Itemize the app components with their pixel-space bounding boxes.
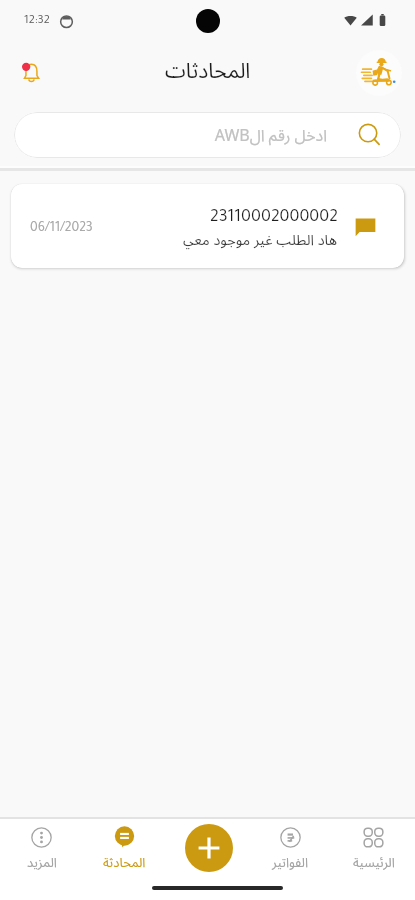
staticText: هاد الطلب غير موجود معي: [183, 229, 338, 249]
staticText: الفواتير: [272, 853, 309, 871]
button[interactable]: Notifications: [13, 55, 49, 91]
button[interactable]: الرئيسية: [332, 827, 415, 877]
staticText: 06/11/2023: [30, 222, 93, 236]
button[interactable]: المزيد: [0, 827, 83, 877]
button[interactable]: Profile: [356, 50, 402, 96]
button[interactable]: ادخل رقم الAWB: [14, 112, 401, 158]
staticText: المزيد: [27, 853, 57, 871]
staticText: الرئيسية: [353, 853, 395, 871]
staticText: المحادثة: [103, 853, 146, 871]
button[interactable]: 06/11/2023: [11, 184, 404, 268]
staticText: 23110002000002: [210, 209, 338, 227]
staticText: المحادثات: [165, 56, 251, 85]
staticText: 12:32: [24, 15, 50, 28]
staticText: ادخل رقم الAWB: [214, 124, 327, 146]
button[interactable]: الفواتير: [249, 827, 332, 877]
button[interactable]: المحادثة: [83, 827, 166, 877]
button[interactable]: New chat: [185, 824, 233, 872]
